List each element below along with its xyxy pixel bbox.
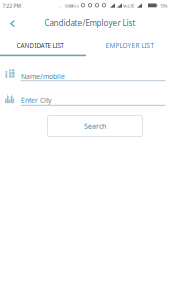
staticText: ... — [58, 3, 61, 8]
staticText: Enter City — [21, 95, 51, 105]
staticText: 7:22 PM — [2, 3, 20, 9]
staticText: CANDIDATE LIST — [16, 41, 63, 50]
staticText: 73% — [160, 3, 168, 9]
staticText: Name/mobile — [21, 71, 65, 81]
staticText: Candidate/Employer List — [44, 18, 135, 28]
button[interactable]: CANDIDATE LIST — [0, 34, 86, 56]
staticText: 0.08K/s — [65, 3, 79, 9]
button[interactable]: Search — [47, 115, 142, 136]
staticText: VoLTE — [123, 3, 134, 9]
button[interactable]: EMPLOYER LIST — [86, 34, 172, 56]
staticText: EMPLOYER LIST — [105, 41, 154, 50]
staticText: Search — [84, 121, 106, 131]
button[interactable]: Back — [3, 14, 21, 34]
